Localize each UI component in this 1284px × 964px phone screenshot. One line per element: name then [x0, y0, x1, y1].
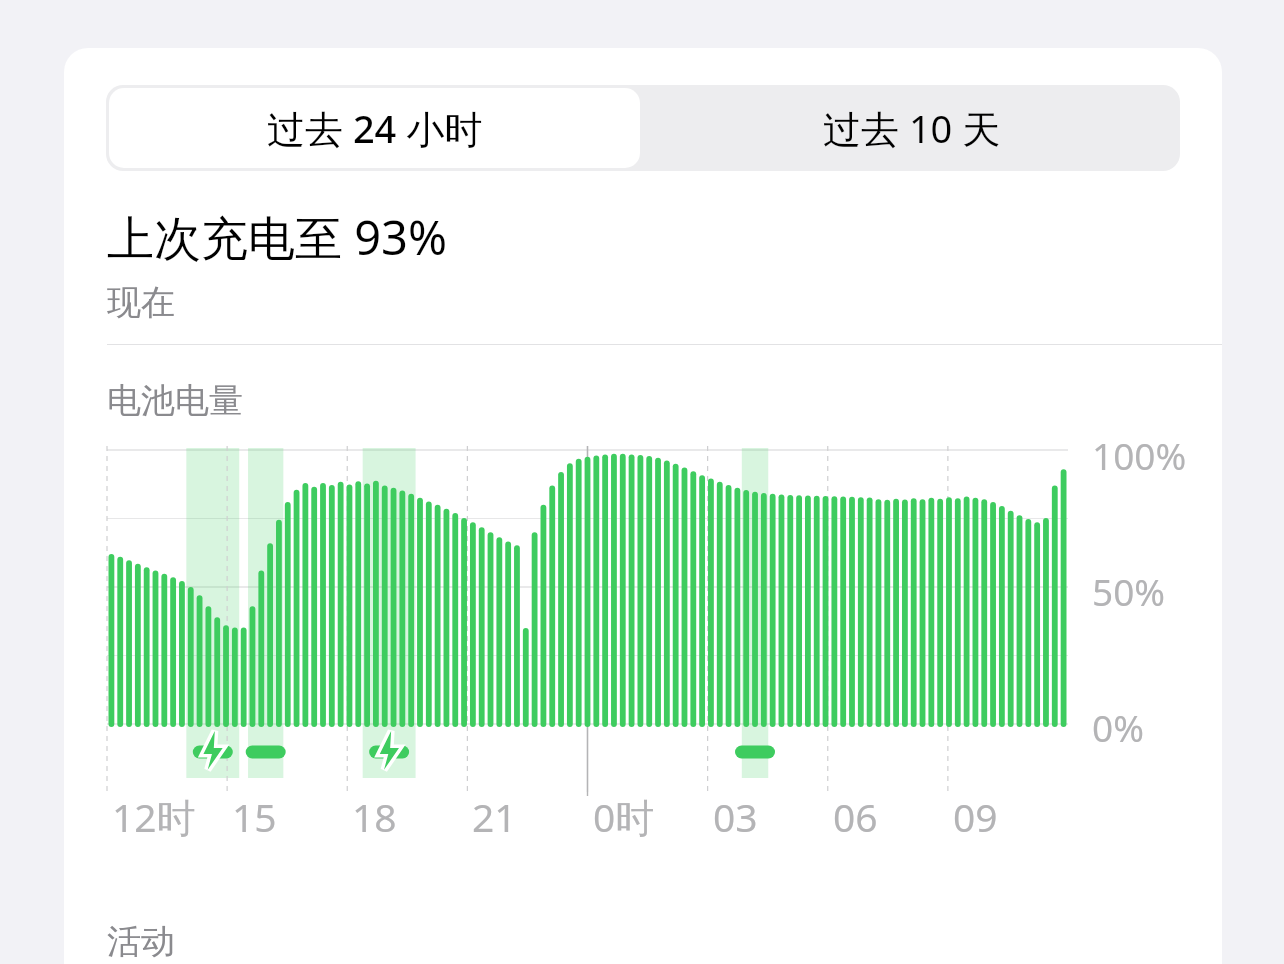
staticText: 21 — [472, 790, 517, 843]
staticText: 100% — [1092, 430, 1187, 480]
staticText: 15 — [232, 790, 277, 843]
button[interactable]: 过去 10 天 — [643, 85, 1180, 171]
staticText: 过去 24 小时 — [267, 102, 483, 154]
staticText: 03 — [713, 790, 758, 843]
staticText: 过去 10 天 — [823, 102, 1001, 154]
staticText: 06 — [833, 790, 878, 843]
staticText: 09 — [953, 790, 998, 843]
staticText: 现在 — [107, 281, 175, 324]
button[interactable]: 过去 24 小时 — [109, 88, 640, 168]
staticText: 0时 — [593, 790, 655, 843]
staticText: 电池电量 — [107, 379, 243, 422]
staticText: 18 — [352, 790, 397, 843]
staticText: 0% — [1092, 702, 1144, 752]
staticText: 上次充电至 93% — [107, 205, 448, 269]
staticText: 活动 — [107, 920, 175, 963]
staticText: 50% — [1092, 566, 1166, 616]
staticText: 12时 — [112, 790, 196, 843]
